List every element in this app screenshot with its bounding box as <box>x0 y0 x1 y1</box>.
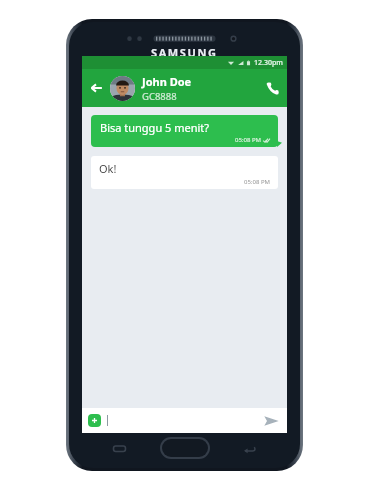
staticText: Bisa tunggu 5 menit? <box>100 120 210 135</box>
staticText: 05:08 PM <box>244 178 270 186</box>
staticText: 12.30pm <box>254 58 283 68</box>
button[interactable]: Call <box>257 69 287 107</box>
button[interactable]: Ok! <box>91 156 278 189</box>
staticText: GC8888 <box>142 90 177 103</box>
button[interactable]: Bisa tunggu 5 menit? <box>91 115 278 147</box>
button[interactable] <box>107 408 257 433</box>
button[interactable]: Add attachment <box>88 414 101 427</box>
button[interactable]: John Doe <box>110 69 257 107</box>
button[interactable]: Back <box>82 69 110 107</box>
button[interactable]: Send <box>261 411 281 431</box>
staticText: SAMSUNG <box>151 45 218 60</box>
button[interactable]: Home <box>160 437 210 459</box>
staticText: Ok! <box>99 161 117 176</box>
staticText: John Doe <box>142 74 192 89</box>
staticText: 05:08 PM <box>235 136 261 144</box>
